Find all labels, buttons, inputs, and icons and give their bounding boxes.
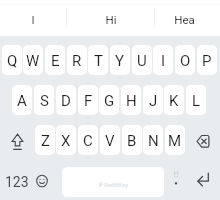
button[interactable]: I [0,1,66,37]
button[interactable]: S [34,85,54,115]
button[interactable]: N [143,125,163,155]
staticText: I [31,13,35,26]
button[interactable]: Space [62,167,164,197]
staticText: U [137,52,147,70]
button[interactable]: Hi [67,1,154,37]
button[interactable]: Y [110,45,130,75]
button[interactable]: C [78,125,98,155]
button[interactable]: T [88,45,108,75]
staticText: M [168,132,182,150]
button[interactable]: J [143,85,163,115]
staticText: X [61,132,71,150]
staticText: E [51,52,60,70]
button[interactable]: M [165,125,185,155]
button[interactable]: P [197,45,217,75]
button[interactable]: Punctuation [164,167,188,197]
button[interactable]: Q [2,45,22,75]
button[interactable]: Hea [155,1,214,37]
button[interactable]: H [121,85,141,115]
staticText: N [148,132,159,150]
button[interactable]: V [100,125,120,155]
staticText: Q [7,52,18,70]
staticText: O [180,52,191,70]
staticText: P [202,52,212,70]
button[interactable]: E [45,45,65,75]
staticText: Hi [105,13,117,26]
button[interactable]: R [67,45,87,75]
button[interactable]: W [23,45,43,75]
staticText: H [126,92,137,110]
staticText: J [149,92,158,110]
button[interactable]: A [12,85,32,115]
staticText: SwiftKey [104,181,129,188]
staticText: A [17,92,27,110]
staticText: B [127,132,137,150]
button[interactable]: Z [35,125,55,155]
staticText: Y [115,52,125,70]
button[interactable]: Enter [188,167,218,197]
button[interactable]: Shift [2,125,33,155]
staticText: Hea [174,13,195,26]
button[interactable]: I [153,45,173,75]
button[interactable]: G [99,85,119,115]
staticText: S [40,92,49,110]
staticText: D [61,92,71,110]
button[interactable]: O [175,45,195,75]
staticText: V [105,132,115,150]
button[interactable]: Emoji [30,167,54,197]
staticText: K [169,92,179,110]
staticText: C [83,132,93,150]
button[interactable]: L [186,85,206,115]
staticText: R [72,52,82,70]
staticText: 123 [5,174,29,190]
staticText: L [192,92,201,110]
button[interactable]: D [56,85,76,115]
staticText: F [84,92,93,110]
button[interactable]: B [122,125,142,155]
button[interactable]: U [132,45,152,75]
button[interactable]: F [78,85,98,115]
button[interactable]: K [164,85,184,115]
button[interactable]: 123 [2,167,32,197]
button[interactable]: Backspace [188,125,218,155]
staticText: G [104,92,115,110]
staticText: W [26,52,40,70]
staticText: Z [41,132,50,150]
staticText: I [161,52,166,70]
button[interactable]: X [56,125,76,155]
staticText: T [94,52,103,70]
